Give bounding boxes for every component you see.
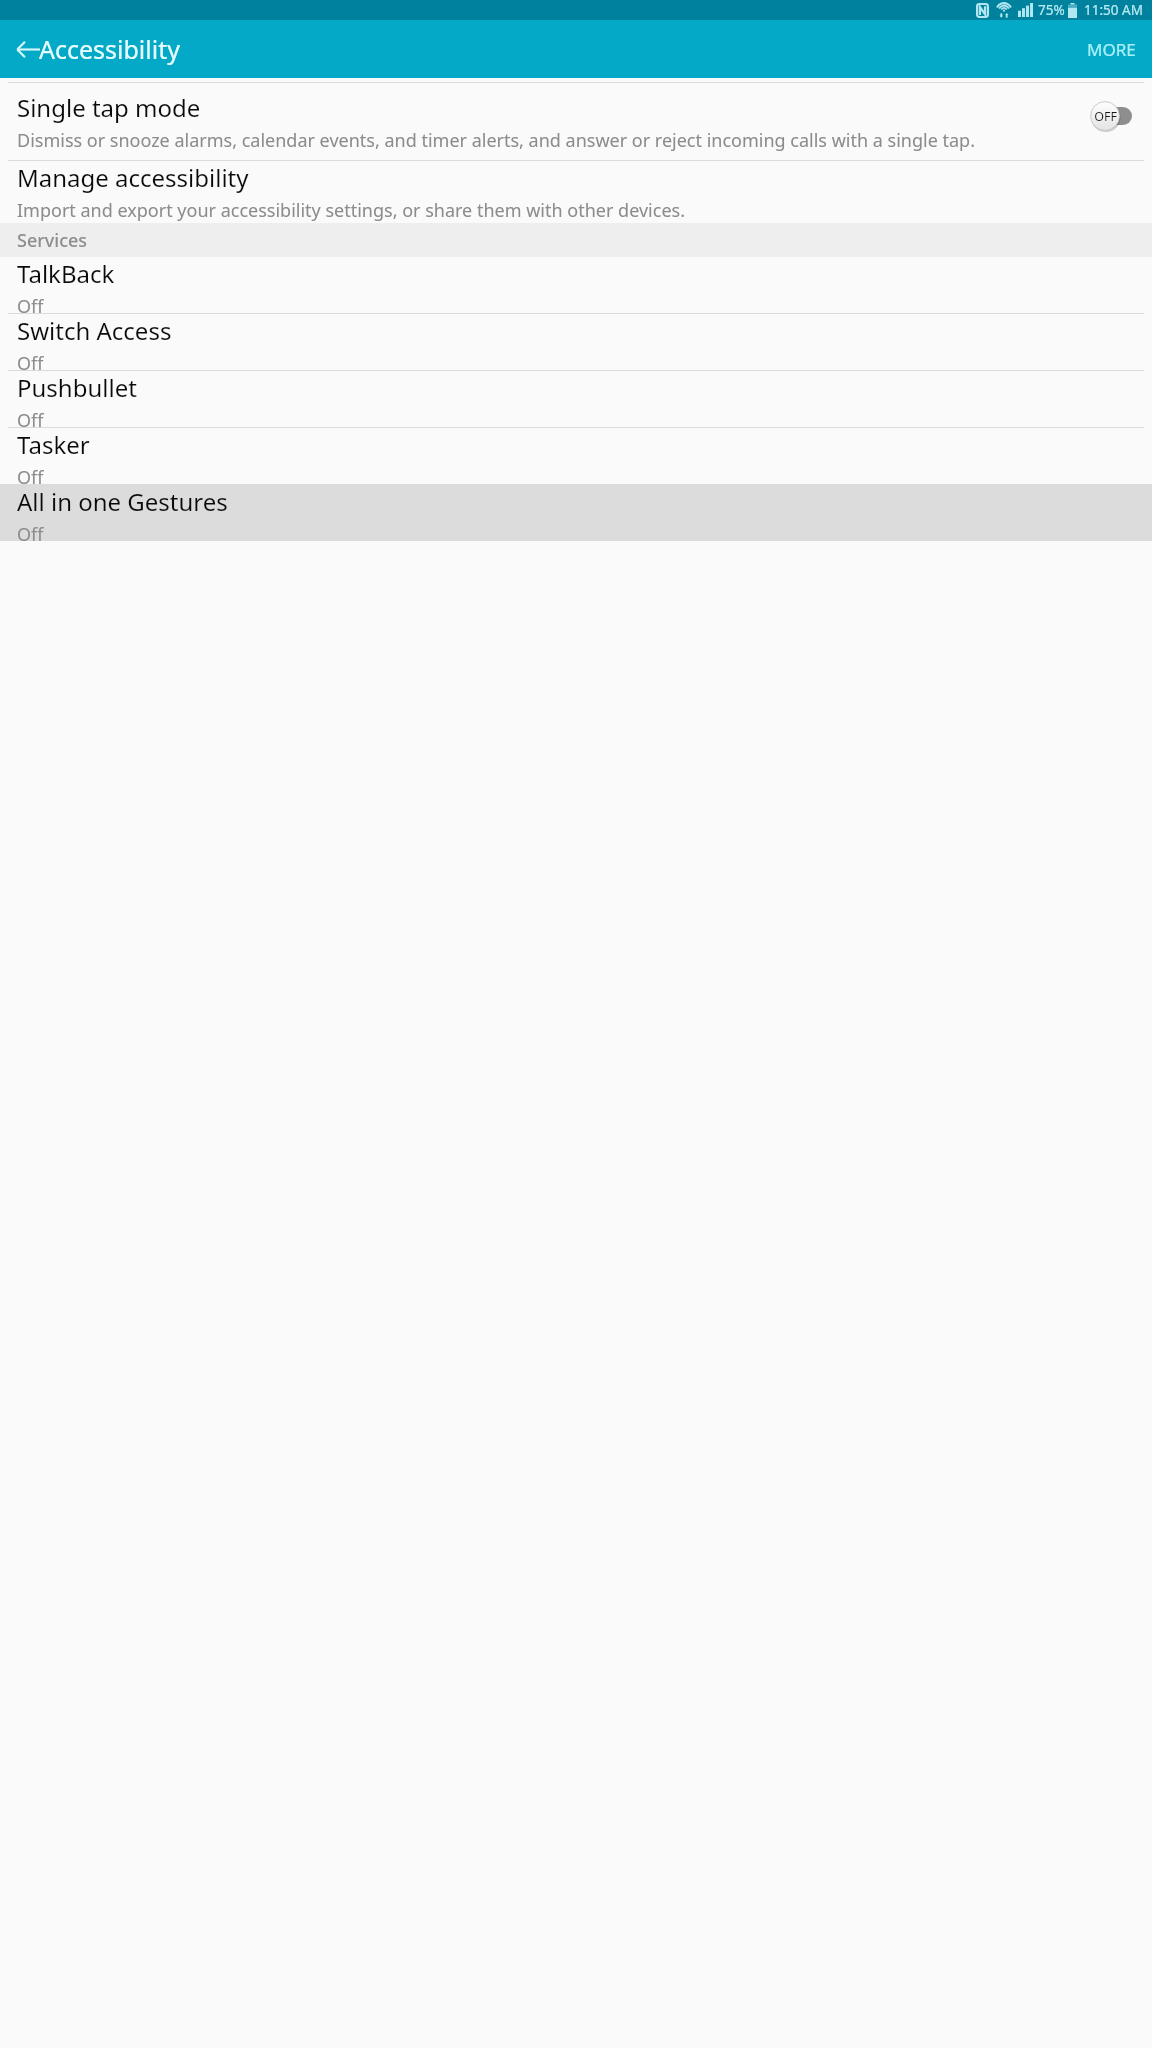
staticText: OFF bbox=[1094, 108, 1117, 125]
button[interactable]: Manage accessibility bbox=[0, 161, 1152, 223]
staticText: 11:50 AM bbox=[1084, 1, 1143, 19]
button[interactable]: Pushbullet bbox=[0, 371, 1152, 427]
staticText: Off bbox=[17, 465, 44, 484]
button[interactable]: Single tap mode bbox=[0, 83, 1152, 160]
button[interactable]: Single tap mode, off bbox=[1090, 101, 1132, 131]
staticText: Off bbox=[17, 408, 44, 427]
staticText: 75% bbox=[1038, 1, 1065, 19]
button[interactable]: All in one Gestures bbox=[0, 485, 1152, 541]
staticText: Off bbox=[17, 294, 44, 313]
staticText: Tasker bbox=[17, 428, 90, 461]
button[interactable]: Back bbox=[4, 25, 52, 73]
staticText: MORE bbox=[1087, 38, 1136, 61]
button[interactable]: Tasker bbox=[0, 428, 1152, 484]
staticText: TalkBack bbox=[17, 257, 115, 290]
button[interactable]: TalkBack bbox=[0, 257, 1152, 313]
staticText: All in one Gestures bbox=[17, 485, 228, 518]
button[interactable]: MORE bbox=[1071, 26, 1152, 73]
staticText: Off bbox=[17, 351, 44, 370]
button[interactable]: Switch Access bbox=[0, 314, 1152, 370]
staticText: Import and export your accessibility set… bbox=[17, 198, 685, 223]
staticText: Single tap mode bbox=[17, 91, 201, 124]
staticText: Pushbullet bbox=[17, 371, 137, 404]
staticText: Accessibility bbox=[39, 32, 180, 66]
staticText: Services bbox=[17, 228, 88, 253]
staticText: Manage accessibility bbox=[17, 161, 249, 194]
staticText: Off bbox=[17, 522, 44, 541]
staticText: Switch Access bbox=[17, 314, 172, 347]
staticText: Dismiss or snooze alarms, calendar event… bbox=[17, 128, 975, 153]
